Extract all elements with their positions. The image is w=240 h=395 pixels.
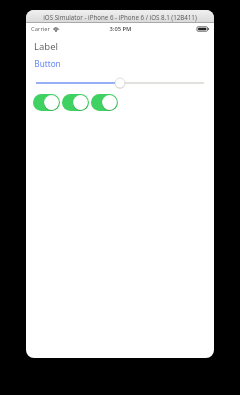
button[interactable]: Toggle switch, on — [91, 94, 118, 111]
staticText: 3:05 PM — [109, 25, 132, 33]
staticText: Button — [34, 58, 61, 69]
staticText: Label — [34, 40, 58, 53]
button[interactable]: Toggle switch, on — [62, 94, 89, 111]
staticText: Carrier — [31, 25, 50, 33]
button[interactable]: Toggle switch, on — [33, 94, 60, 111]
staticText: iOS Simulator - iPhone 6 - iPhone 6 / iO… — [43, 13, 197, 21]
button[interactable]: Slider — [26, 75, 214, 91]
button[interactable]: Button — [34, 57, 61, 70]
